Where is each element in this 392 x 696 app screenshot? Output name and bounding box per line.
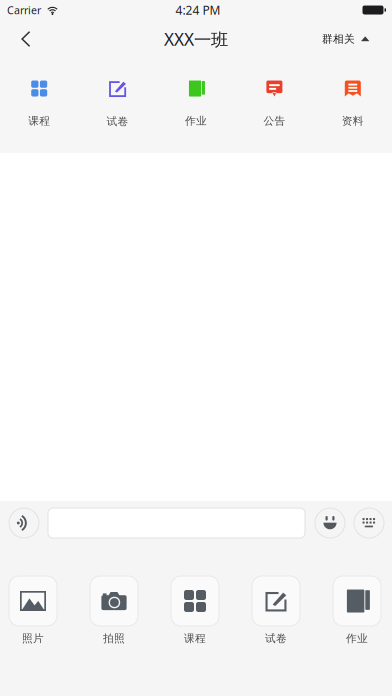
staticText: 作业	[346, 632, 368, 645]
staticText: 群相关	[322, 32, 355, 45]
staticText: 课程	[184, 632, 206, 645]
staticText: Carrier	[7, 3, 41, 17]
button[interactable]: 课程	[0, 80, 78, 128]
button[interactable]: Keyboard	[354, 508, 384, 538]
button[interactable]: 资料	[314, 80, 392, 128]
staticText: 4:24 PM	[175, 2, 220, 18]
button[interactable]: 公告	[235, 80, 314, 128]
staticText: 试卷	[107, 115, 129, 128]
staticText: 资料	[342, 114, 364, 128]
staticText: 课程	[28, 114, 50, 128]
staticText: 试卷	[265, 632, 287, 645]
button[interactable]: Emoji	[315, 508, 345, 538]
staticText: 作业	[185, 114, 207, 128]
staticText: 照片	[22, 632, 44, 645]
button[interactable]: 课程	[162, 576, 228, 645]
button[interactable]: 作业	[157, 80, 235, 128]
button[interactable]: 作业	[324, 576, 390, 645]
button[interactable]: Back	[0, 24, 45, 54]
button[interactable]: Voice input	[9, 508, 39, 538]
button[interactable]: 群相关	[310, 24, 392, 53]
button[interactable]: 照片	[0, 576, 66, 645]
button[interactable]: 试卷	[78, 80, 157, 128]
staticText: XXX一班	[164, 27, 228, 50]
button[interactable]: 试卷	[243, 576, 309, 645]
staticText: 拍照	[103, 632, 125, 645]
button[interactable]: 拍照	[81, 576, 147, 645]
staticText: 公告	[263, 114, 285, 128]
